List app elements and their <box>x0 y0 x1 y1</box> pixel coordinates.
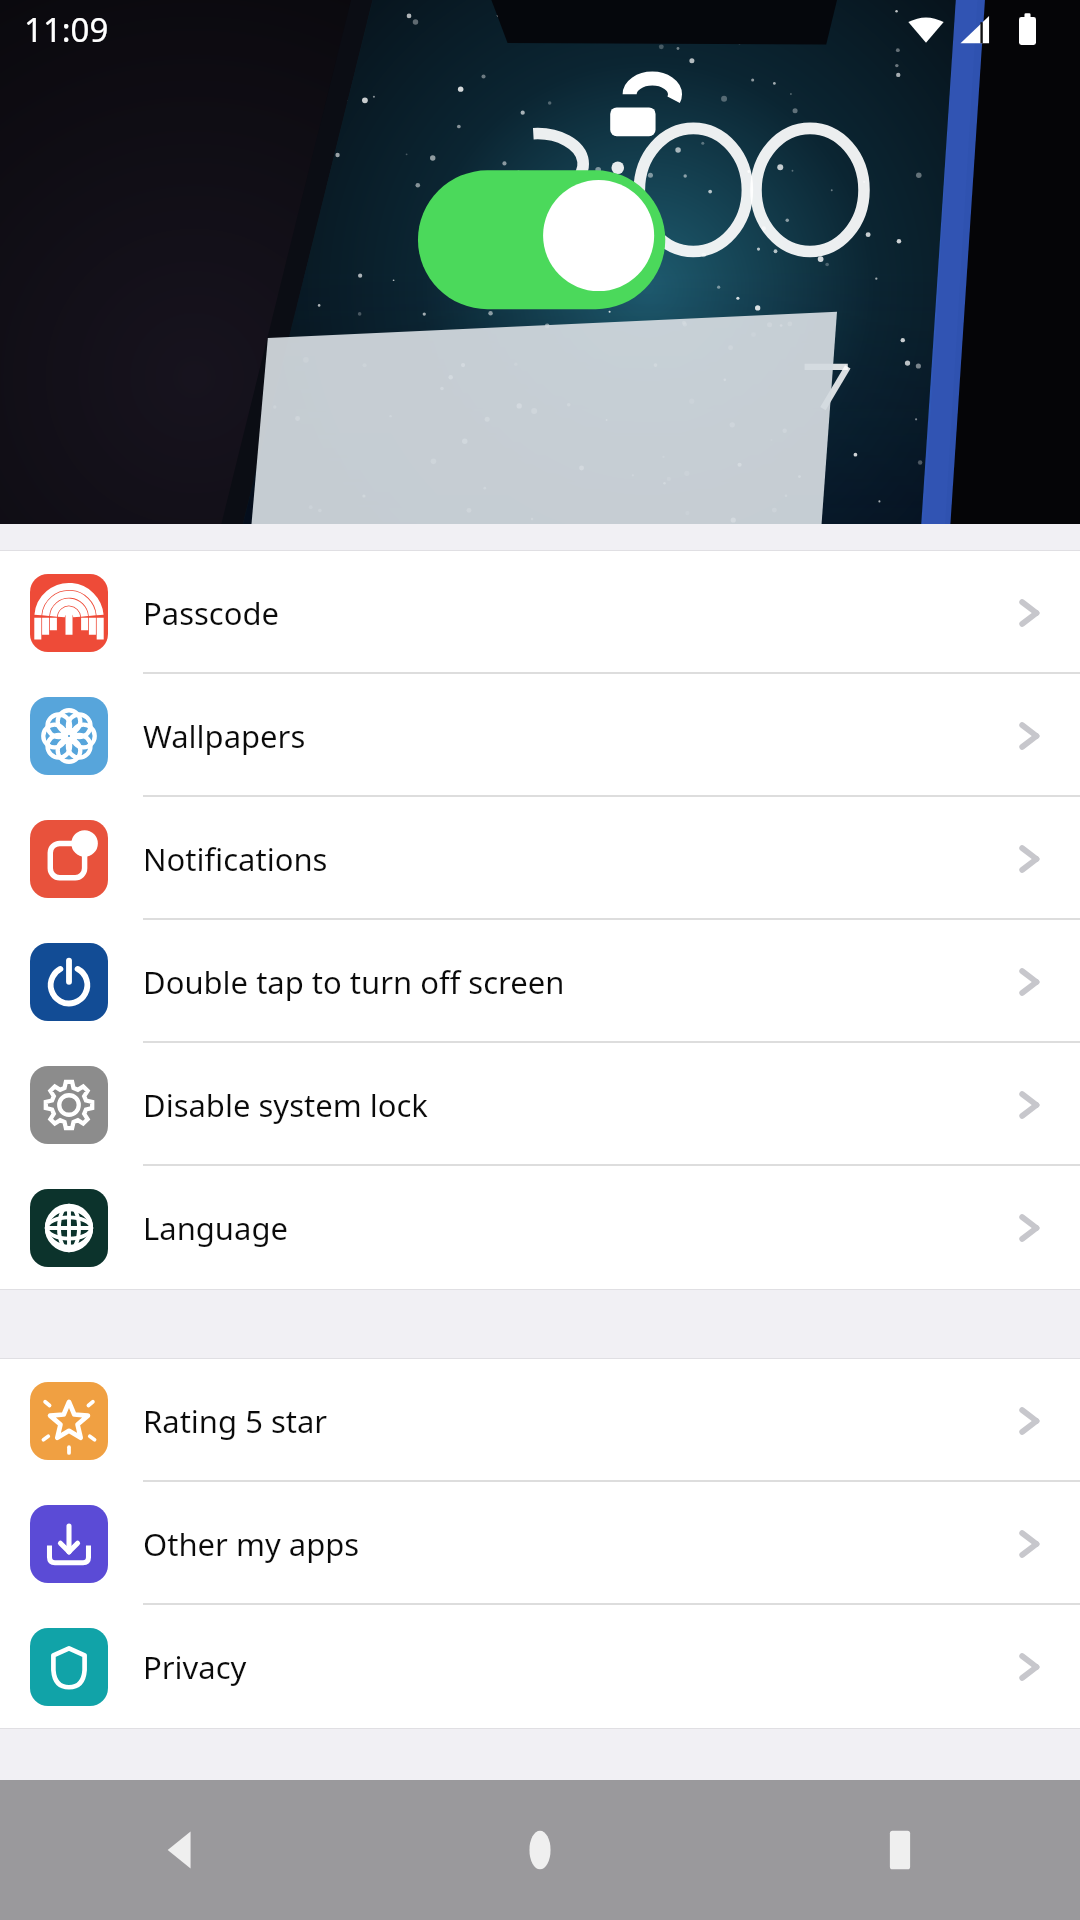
staticText: Disable system lock <box>143 1084 428 1126</box>
staticText: Rating 5 star <box>143 1400 328 1442</box>
button[interactable]: Double tap to turn off screen <box>0 920 1080 1043</box>
button[interactable]: Recent apps <box>720 1780 1080 1920</box>
staticText: Passcode <box>143 592 280 634</box>
button[interactable]: Back <box>0 1780 360 1920</box>
staticText: 11:09 <box>24 7 109 52</box>
button[interactable]: Notifications <box>0 797 1080 920</box>
staticText: Double tap to turn off screen <box>143 961 565 1003</box>
button[interactable]: Language <box>0 1166 1080 1289</box>
button[interactable]: Passcode <box>0 551 1080 674</box>
staticText: Wallpapers <box>143 715 306 757</box>
button[interactable]: Other my apps <box>0 1482 1080 1605</box>
button[interactable]: Disable system lock <box>0 1043 1080 1166</box>
staticText: Other my apps <box>143 1523 360 1565</box>
button[interactable]: Home <box>360 1780 720 1920</box>
button[interactable]: Privacy <box>0 1605 1080 1728</box>
staticText: Notifications <box>143 838 328 880</box>
button[interactable]: Rating 5 star <box>0 1359 1080 1482</box>
staticText: Language <box>143 1207 288 1249</box>
button[interactable]: Wallpapers <box>0 674 1080 797</box>
staticText: Privacy <box>143 1646 247 1688</box>
